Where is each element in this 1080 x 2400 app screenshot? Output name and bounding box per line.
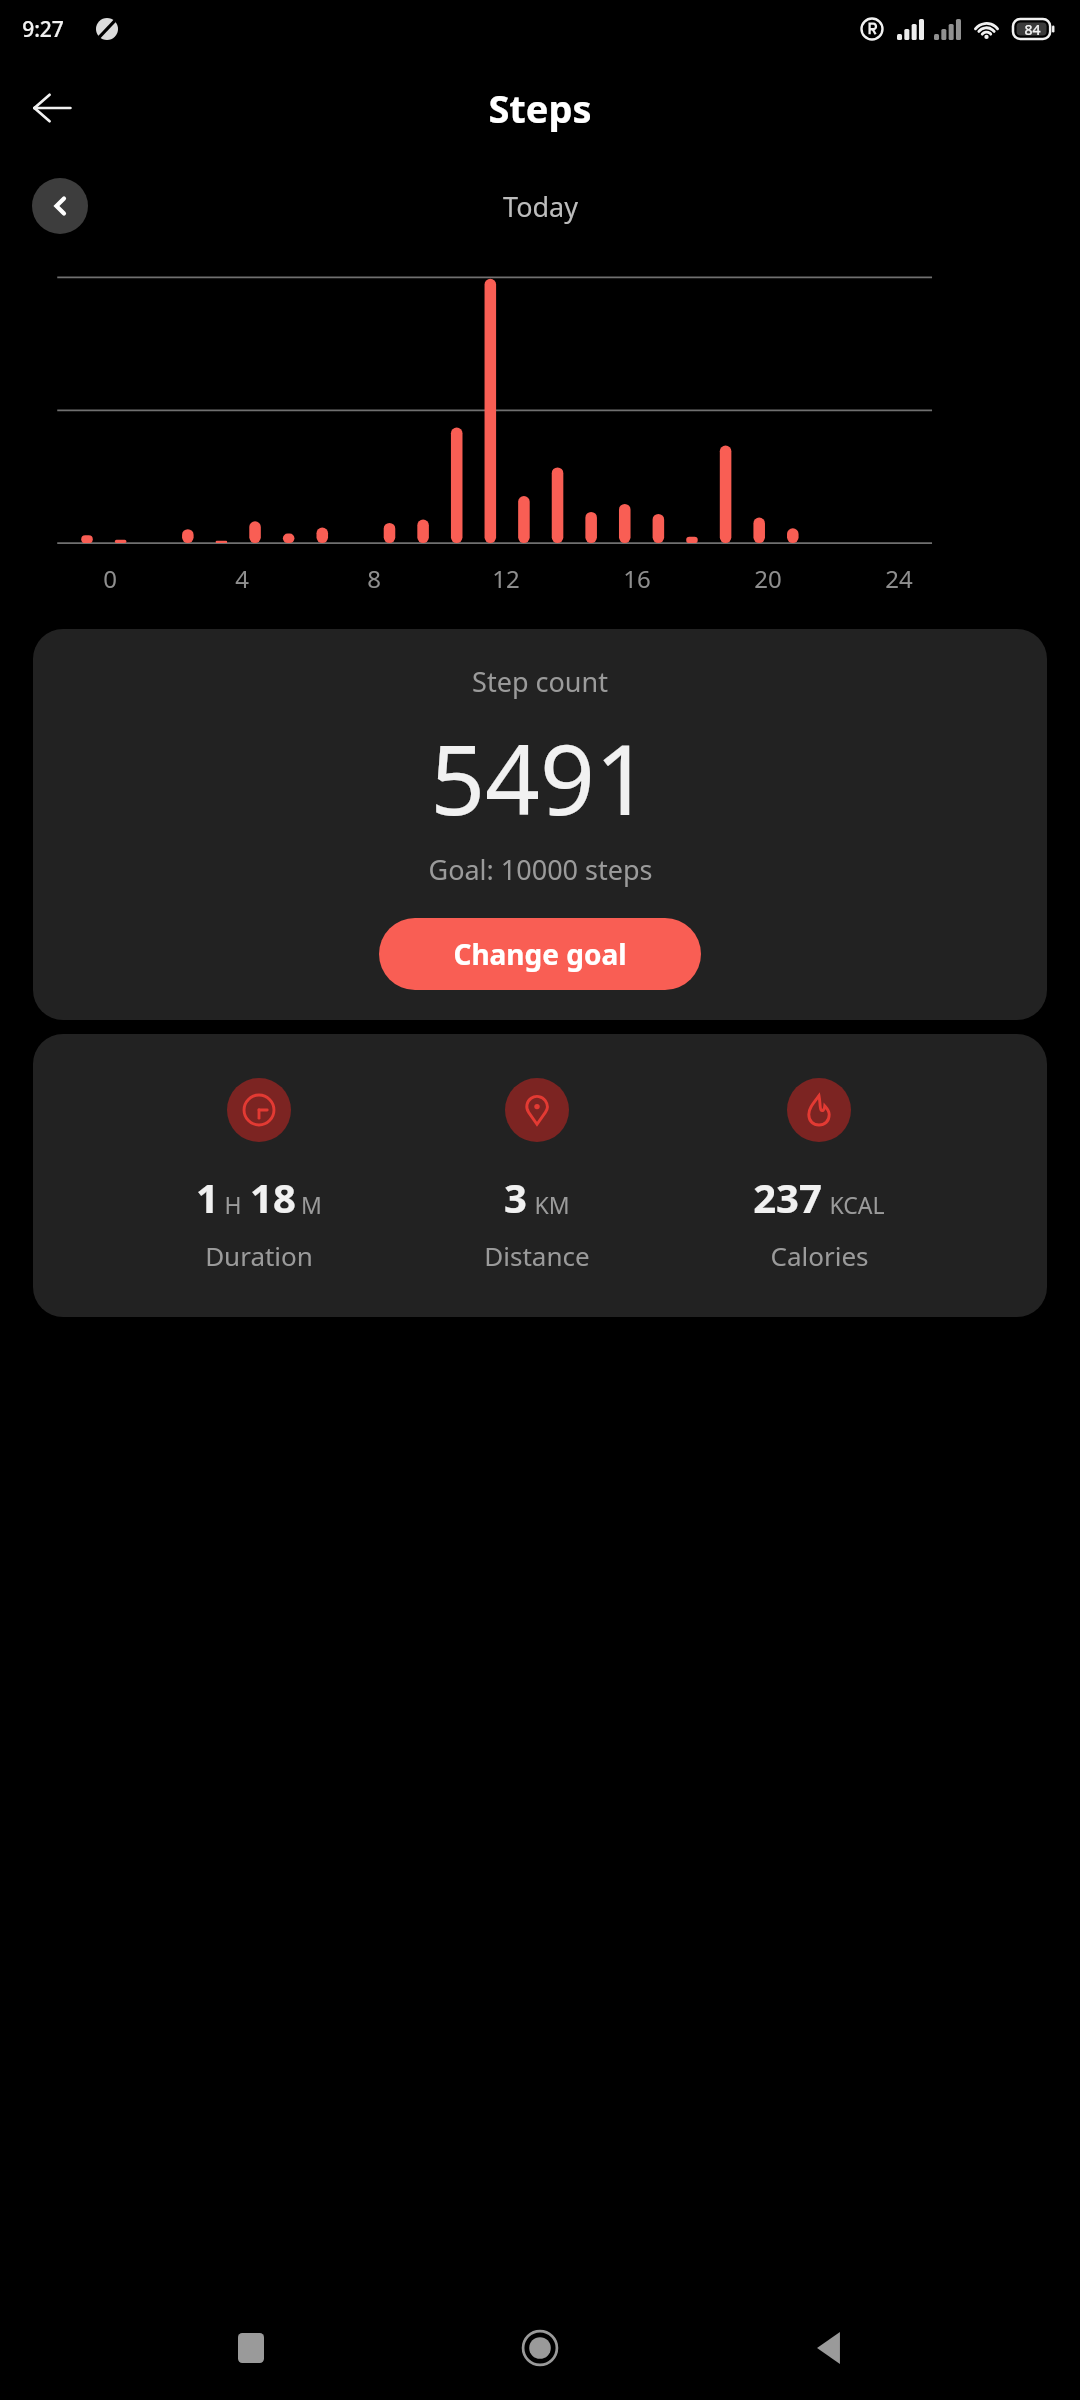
- button[interactable]: 1: [33, 1034, 1047, 1317]
- staticText: 237: [753, 1170, 822, 1224]
- staticText: 1: [196, 1170, 219, 1224]
- staticText: M: [301, 1189, 322, 1220]
- staticText: KM: [534, 1189, 570, 1220]
- staticText: 84: [1024, 20, 1041, 39]
- staticText: 4: [235, 562, 249, 595]
- staticText: Duration: [205, 1238, 313, 1273]
- staticText: 8: [367, 562, 381, 595]
- button[interactable]: Home: [502, 2310, 578, 2386]
- button[interactable]: Previous day: [32, 178, 88, 234]
- staticText: 12: [492, 562, 520, 595]
- staticText: 24: [885, 562, 913, 595]
- staticText: Steps: [488, 82, 592, 134]
- staticText: Calories: [770, 1238, 869, 1273]
- staticText: Step count: [472, 663, 608, 700]
- staticText: 18: [250, 1170, 296, 1224]
- button[interactable]: Back: [791, 2310, 867, 2386]
- button[interactable]: Back: [22, 78, 82, 138]
- staticText: 5491: [430, 712, 650, 843]
- staticText: 3: [504, 1170, 527, 1224]
- button[interactable]: Recent apps: [213, 2310, 289, 2386]
- staticText: 9:27: [22, 15, 64, 44]
- staticText: H: [224, 1189, 242, 1220]
- staticText: KCAL: [829, 1189, 885, 1220]
- staticText: Distance: [484, 1238, 590, 1273]
- staticText: Today: [503, 188, 578, 225]
- button[interactable]: Step count: [33, 629, 1047, 1020]
- staticText: 20: [754, 562, 782, 595]
- staticText: Change goal: [453, 935, 627, 973]
- staticText: Goal: 10000 steps: [428, 851, 653, 888]
- button[interactable]: Change goal: [379, 918, 701, 990]
- staticText: 0: [103, 562, 117, 595]
- staticText: 16: [623, 562, 651, 595]
